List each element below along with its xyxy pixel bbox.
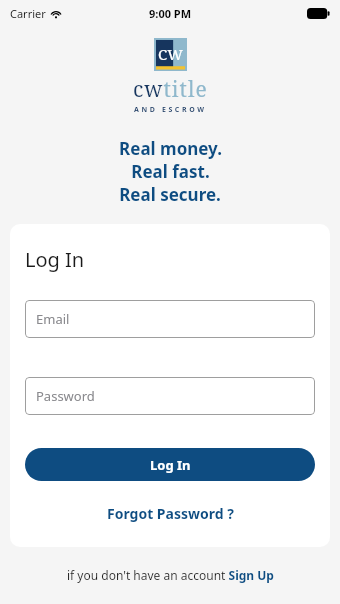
staticText: Log In [25,246,85,273]
staticText: Forgot Password ? [107,504,234,523]
staticText: CW [158,44,183,64]
other: CW Title and Escrow logo [154,38,187,71]
button[interactable]: Email [25,300,315,338]
staticText: Real secure. [119,183,221,206]
staticText: AND ESCROW [134,105,207,115]
staticText: Real money. [119,137,222,160]
staticText: Log In [150,456,191,474]
staticText: Carrier [10,6,46,21]
staticText: 9:00 PM [149,6,192,21]
button[interactable]: Password [25,377,315,415]
staticText: cwtitle [133,75,208,104]
staticText: Real fast. [131,160,210,183]
staticText: Email [36,310,70,328]
button[interactable]: Forgot Password ? [101,501,240,526]
staticText: Password [36,387,95,405]
button[interactable]: Log In [25,448,315,481]
staticText: if you don't have an account Sign Up [67,567,274,583]
button[interactable]: if you don't have an account Sign Up [61,564,280,586]
